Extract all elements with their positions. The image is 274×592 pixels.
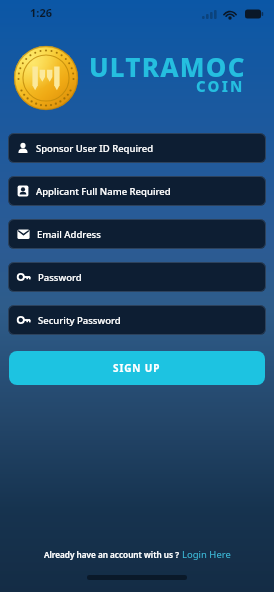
- button[interactable]: Security Password: [8, 305, 266, 335]
- button[interactable]: Password: [8, 262, 266, 292]
- button[interactable]: Applicant Full Name Required: [8, 176, 266, 206]
- staticText: SIGN UP: [113, 361, 161, 375]
- staticText: Sponsor User ID Required: [36, 142, 154, 155]
- staticText: Security Password: [38, 314, 121, 327]
- button[interactable]: Sponsor User ID Required: [8, 133, 266, 163]
- button[interactable]: Email Address: [8, 219, 266, 249]
- staticText: ULTRAMOC: [89, 49, 246, 84]
- button[interactable]: SIGN UP: [9, 351, 265, 385]
- staticText: Password: [38, 271, 82, 284]
- staticText: 1:26: [30, 5, 52, 20]
- staticText: Email Address: [37, 228, 101, 241]
- staticText: Applicant Full Name Required: [36, 185, 171, 198]
- staticText: Already have an account with us ?: [44, 549, 182, 560]
- button[interactable]: Login Here: [182, 548, 231, 561]
- staticText: COIN: [196, 76, 245, 96]
